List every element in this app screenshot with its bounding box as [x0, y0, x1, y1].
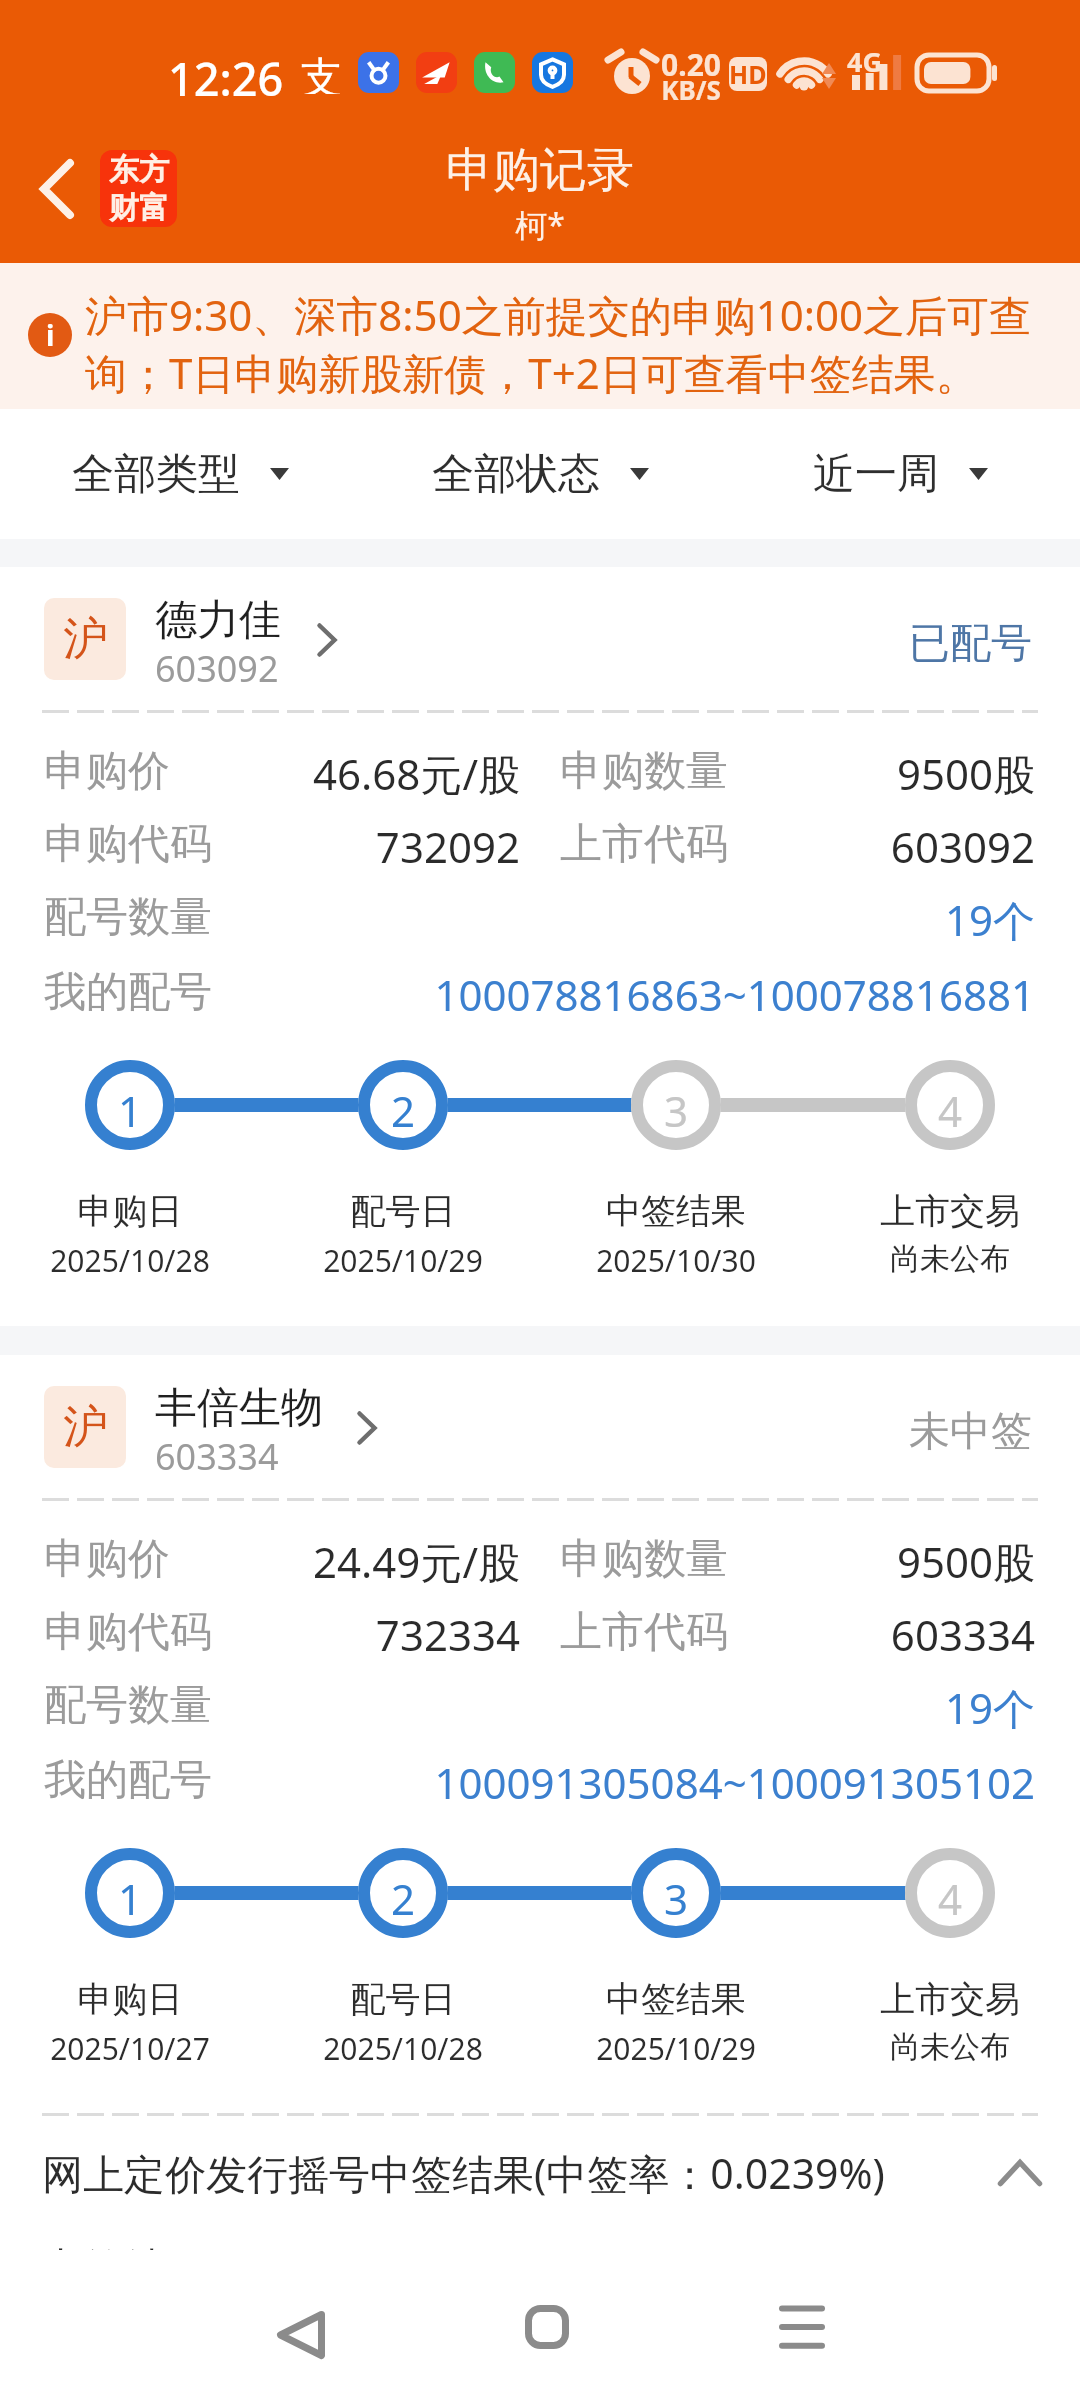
- button[interactable]: 丰倍生物: [155, 1373, 379, 1477]
- staticText: 尚未公布: [820, 1240, 1080, 1278]
- staticText: 9500股: [0, 1533, 1035, 1590]
- staticText: 申购记录: [0, 141, 1080, 200]
- staticText: 19个: [0, 1679, 1035, 1736]
- button[interactable]: Back: [211, 2271, 391, 2399]
- button[interactable]: 沪: [0, 1355, 1080, 2114]
- staticText: 2: [353, 1082, 453, 1139]
- staticText: 2025/10/28: [273, 2028, 533, 2069]
- staticText: 配号数量: [44, 1679, 212, 1732]
- staticText: 网上定价发行摇号中签结果(中签率：0.0239%): [42, 2145, 885, 2201]
- staticText: 尚未公布: [820, 2028, 1080, 2066]
- staticText: 申购代码: [44, 818, 212, 871]
- staticText: 603334: [155, 1432, 279, 1481]
- staticText: 申购数量: [560, 1533, 728, 1586]
- staticText: 东方: [109, 151, 169, 189]
- staticText: 3: [626, 1082, 726, 1139]
- staticText: 19个: [0, 891, 1035, 948]
- staticText: 4: [900, 1082, 1000, 1139]
- staticText: 我的配号: [44, 1754, 212, 1807]
- staticText: 支: [300, 52, 342, 94]
- button[interactable]: Recent apps: [712, 2263, 892, 2391]
- button[interactable]: 全部类型: [0, 409, 360, 539]
- staticText: 中签结果: [546, 1977, 806, 2021]
- staticText: 申购代码: [44, 1606, 212, 1659]
- staticText: 2025/10/29: [273, 1240, 533, 1281]
- staticText: 中签结果: [546, 1189, 806, 1233]
- staticText: 配号日: [273, 1189, 533, 1233]
- staticText: 申购日: [0, 1977, 260, 2021]
- button[interactable]: 全部状态: [360, 409, 720, 539]
- staticText: 732334: [0, 1606, 520, 1663]
- staticText: 603092: [0, 818, 1035, 875]
- staticText: 申购价: [44, 1533, 170, 1586]
- staticText: 申购价: [44, 745, 170, 798]
- staticText: 732092: [0, 818, 520, 875]
- staticText: 2025/10/27: [0, 2028, 260, 2069]
- staticText: 3: [626, 1870, 726, 1927]
- staticText: 603334: [0, 1606, 1035, 1663]
- staticText: 100078816863~100078816881: [0, 966, 1035, 1023]
- staticText: 2025/10/28: [0, 1240, 260, 1281]
- staticText: HD: [729, 57, 767, 91]
- staticText: 柯*: [0, 203, 1080, 247]
- staticText: 46.68元/股: [0, 745, 520, 802]
- staticText: 丰倍生物: [155, 1382, 323, 1435]
- staticText: 2025/10/29: [546, 2028, 806, 2069]
- staticText: 2025/10/30: [546, 1240, 806, 1281]
- staticText: 12:26: [168, 48, 284, 109]
- staticText: 4G: [847, 43, 882, 80]
- button[interactable]: 近一周: [720, 409, 1080, 539]
- staticText: 配号数量: [44, 891, 212, 944]
- staticText: 全部状态: [432, 448, 600, 501]
- staticText: 0.20: [656, 44, 726, 85]
- staticText: 上市交易: [820, 1189, 1080, 1233]
- button[interactable]: 东方财富 home: [100, 150, 177, 227]
- staticText: 沪市9:30、深市8:50之前提交的申购10:00之后可查询；T日申购新股新债，…: [85, 286, 1037, 401]
- staticText: 上市代码: [560, 1606, 728, 1659]
- staticText: 24.49元/股: [0, 1533, 520, 1590]
- staticText: 近一周: [813, 448, 939, 501]
- button[interactable]: 网上定价发行摇号中签结果(中签率：0.0239%): [0, 2125, 1080, 2221]
- staticText: 沪: [63, 611, 108, 668]
- staticText: 9500股: [0, 745, 1035, 802]
- staticText: 1: [80, 1870, 180, 1927]
- button[interactable]: 沪: [0, 567, 1080, 1326]
- staticText: 100091305084~100091305102: [0, 1754, 1035, 1811]
- staticText: 中签结果: [42, 2243, 206, 2295]
- staticText: 财富: [109, 189, 169, 227]
- staticText: 上市交易: [820, 1977, 1080, 2021]
- staticText: 全部类型: [72, 448, 240, 501]
- staticText: 我的配号: [44, 966, 212, 1019]
- staticText: 1: [80, 1082, 180, 1139]
- staticText: 上市代码: [560, 818, 728, 871]
- staticText: 申购数量: [560, 745, 728, 798]
- button[interactable]: 未中签: [0, 1406, 1032, 1458]
- button[interactable]: Home: [457, 2263, 637, 2391]
- button[interactable]: 德力佳: [155, 585, 339, 689]
- staticText: 2: [353, 1870, 453, 1927]
- staticText: 申购日: [0, 1189, 260, 1233]
- button[interactable]: Back: [17, 145, 97, 233]
- button[interactable]: 已配号: [0, 618, 1032, 670]
- staticText: 4: [900, 1870, 1000, 1927]
- staticText: KB/S: [656, 72, 726, 107]
- staticText: 603092: [155, 644, 279, 693]
- staticText: i: [46, 316, 55, 354]
- staticText: 配号日: [273, 1977, 533, 2021]
- staticText: 德力佳: [155, 594, 281, 647]
- staticText: 沪: [63, 1399, 108, 1456]
